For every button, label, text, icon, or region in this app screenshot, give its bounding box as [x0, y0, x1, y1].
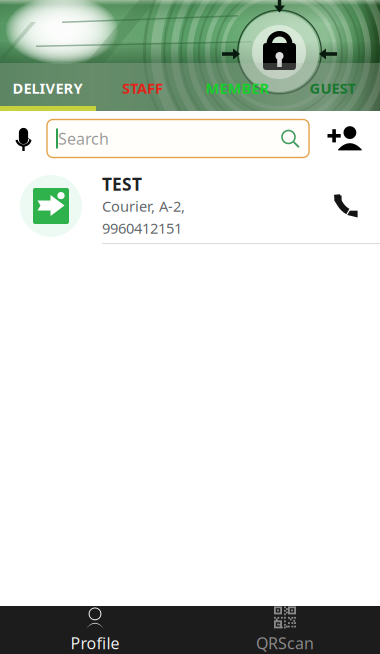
button[interactable]: Voice search — [0, 115, 47, 161]
button[interactable]: MEMBER — [190, 70, 285, 106]
button[interactable]: STAFF — [95, 70, 190, 106]
button[interactable]: Add contact — [309, 115, 380, 161]
staticText: QRScan — [256, 632, 314, 654]
button[interactable]: Profile — [0, 606, 190, 654]
button[interactable]: GUEST — [285, 70, 380, 106]
staticText: DELIVERY — [12, 78, 82, 98]
staticText: Search — [58, 128, 109, 149]
button[interactable]: QRScan — [190, 606, 380, 654]
button[interactable]: Search — [47, 119, 309, 157]
staticText: TEST — [102, 172, 142, 195]
staticText: MEMBER — [205, 78, 269, 98]
staticText: STAFF — [122, 78, 163, 98]
staticText: Courier, A-2, — [102, 196, 185, 216]
staticText: 9960412151 — [102, 218, 182, 238]
staticText: Profile — [70, 632, 119, 654]
button[interactable]: DELIVERY — [0, 70, 95, 106]
button[interactable]: TEST — [0, 166, 380, 244]
staticText: GUEST — [309, 78, 355, 98]
